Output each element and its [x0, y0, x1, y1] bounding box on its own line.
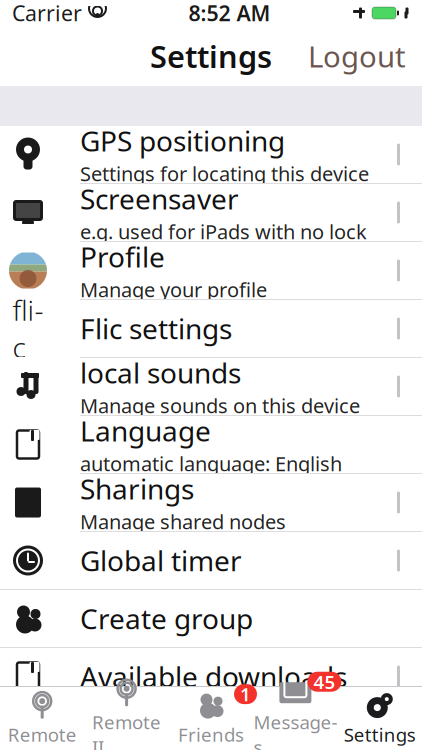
staticText: Settings for locating this device [80, 160, 369, 187]
button[interactable]: Profile [0, 242, 422, 300]
staticText: Create group [80, 600, 253, 637]
staticText: GPS positioning [80, 122, 285, 159]
staticText: Sharings [80, 470, 194, 507]
button[interactable]: Remote II [84, 688, 169, 748]
staticText: Profile [80, 238, 165, 275]
staticText: Remote II [92, 710, 161, 750]
button[interactable]: GPS positioning [0, 126, 422, 184]
staticText: Global timer [80, 542, 242, 579]
button[interactable]: Sharings [0, 474, 422, 532]
staticText: Carrier [12, 0, 82, 27]
staticText: automatic language: English [80, 450, 342, 477]
staticText: Manage sounds on this device [80, 392, 360, 419]
staticText: Flic settings [80, 310, 232, 347]
staticText: Settings [150, 36, 272, 76]
staticText: Language [80, 412, 211, 449]
staticText: Remote [8, 722, 77, 747]
staticText: Settings [344, 722, 416, 747]
button[interactable]: flic [0, 300, 422, 358]
staticText: 1 [240, 682, 251, 706]
staticText: Messages [253, 710, 337, 750]
staticText: 8:52 AM [188, 0, 270, 27]
button[interactable]: Remote [0, 688, 84, 748]
staticText: local sounds [80, 354, 241, 391]
staticText: flic [12, 291, 43, 366]
staticText: Friends [178, 722, 244, 747]
button[interactable]: Screensaver [0, 184, 422, 242]
button[interactable]: 1 [169, 688, 253, 748]
button[interactable]: Settings [338, 688, 422, 748]
button[interactable]: Global timer [0, 532, 422, 590]
button[interactable]: Available downloads [0, 648, 422, 706]
button[interactable]: local sounds [0, 358, 422, 416]
staticText: Logout [308, 36, 406, 75]
button[interactable]: 45 [253, 688, 338, 748]
staticText: e.g. used for iPads with no lock [80, 218, 367, 245]
staticText: Manage your profile [80, 276, 267, 303]
staticText: Available downloads [80, 658, 347, 695]
staticText: 45 [313, 669, 335, 694]
staticText: Manage shared nodes [80, 508, 286, 535]
button[interactable]: Language [0, 416, 422, 474]
staticText: Screensaver [80, 180, 239, 217]
button[interactable]: Create group [0, 590, 422, 648]
button[interactable]: Logout [296, 30, 418, 81]
